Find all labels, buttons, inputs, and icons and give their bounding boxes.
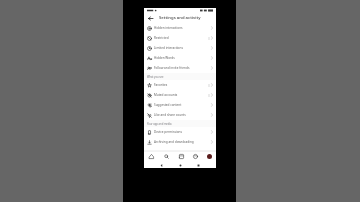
button[interactable]: Hidden Words [144,53,216,63]
staticText: Settings and activity [159,15,201,21]
staticText: Suggested content [154,103,182,107]
staticText: Like and share counts [154,113,186,117]
other: Home [179,164,182,167]
button[interactable]: Limited interactions [144,43,216,53]
button[interactable]: Archiving and downloading [144,137,216,147]
staticText: Favorites [154,83,168,87]
button[interactable]: Like and share counts [144,110,216,120]
other: Back [160,164,163,167]
button[interactable]: Profile [207,154,212,159]
staticText: Limited interactions [154,46,183,50]
button[interactable]: Suggested content [144,100,216,110]
button[interactable]: Follow and invite friends [144,63,216,73]
button[interactable]: Muted accounts [144,90,216,100]
button[interactable]: Restricted [144,33,216,43]
staticText: Restricted [154,36,169,40]
button[interactable]: Hidden interactions [144,23,216,33]
staticText: Hidden Words [154,56,175,60]
other: Recents [197,164,200,167]
button[interactable]: Shop [192,153,199,160]
staticText: Muted accounts [154,93,178,97]
button[interactable]: Device permissions [144,127,216,137]
button[interactable]: Favorites [144,80,216,90]
staticText: Follow and invite friends [154,66,190,70]
staticText: Hidden interactions [154,26,183,30]
button[interactable]: Reels [178,153,185,160]
button[interactable]: Home [148,153,155,160]
staticText: What you see [147,75,164,79]
staticText: Device permissions [154,130,182,134]
button[interactable]: Back [146,14,154,22]
staticText: Your app and media [147,122,172,126]
staticText: Archiving and downloading [154,140,194,144]
button[interactable]: Search [163,153,170,160]
